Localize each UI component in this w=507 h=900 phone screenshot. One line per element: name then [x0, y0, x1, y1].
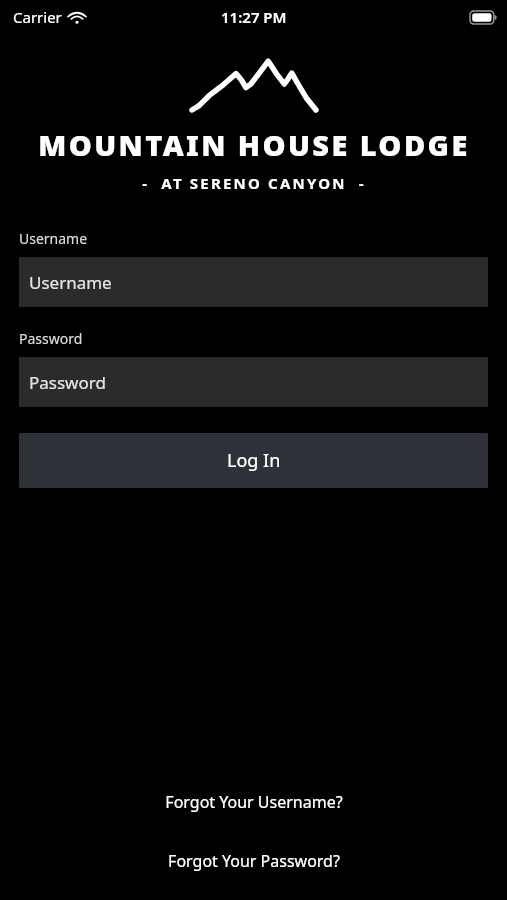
- staticText: Carrier: [13, 7, 62, 27]
- button[interactable]: Forgot Your Password?: [158, 848, 350, 874]
- button[interactable]: Password: [19, 357, 488, 407]
- staticText: 11:27 PM: [221, 7, 287, 27]
- staticText: Username: [19, 229, 88, 248]
- button[interactable]: Username: [19, 257, 488, 307]
- staticText: MOUNTAIN HOUSE LODGE: [38, 125, 470, 164]
- staticText: Forgot Your Password?: [168, 850, 340, 872]
- button[interactable]: Log In: [19, 433, 488, 488]
- staticText: Log In: [227, 448, 281, 473]
- staticText: Username: [29, 271, 112, 294]
- staticText: Password: [19, 329, 83, 348]
- staticText: - AT SERENO CANYON -: [142, 173, 366, 193]
- button[interactable]: Forgot Your Username?: [155, 789, 353, 815]
- staticText: Forgot Your Username?: [165, 791, 343, 813]
- staticText: Password: [29, 371, 106, 394]
